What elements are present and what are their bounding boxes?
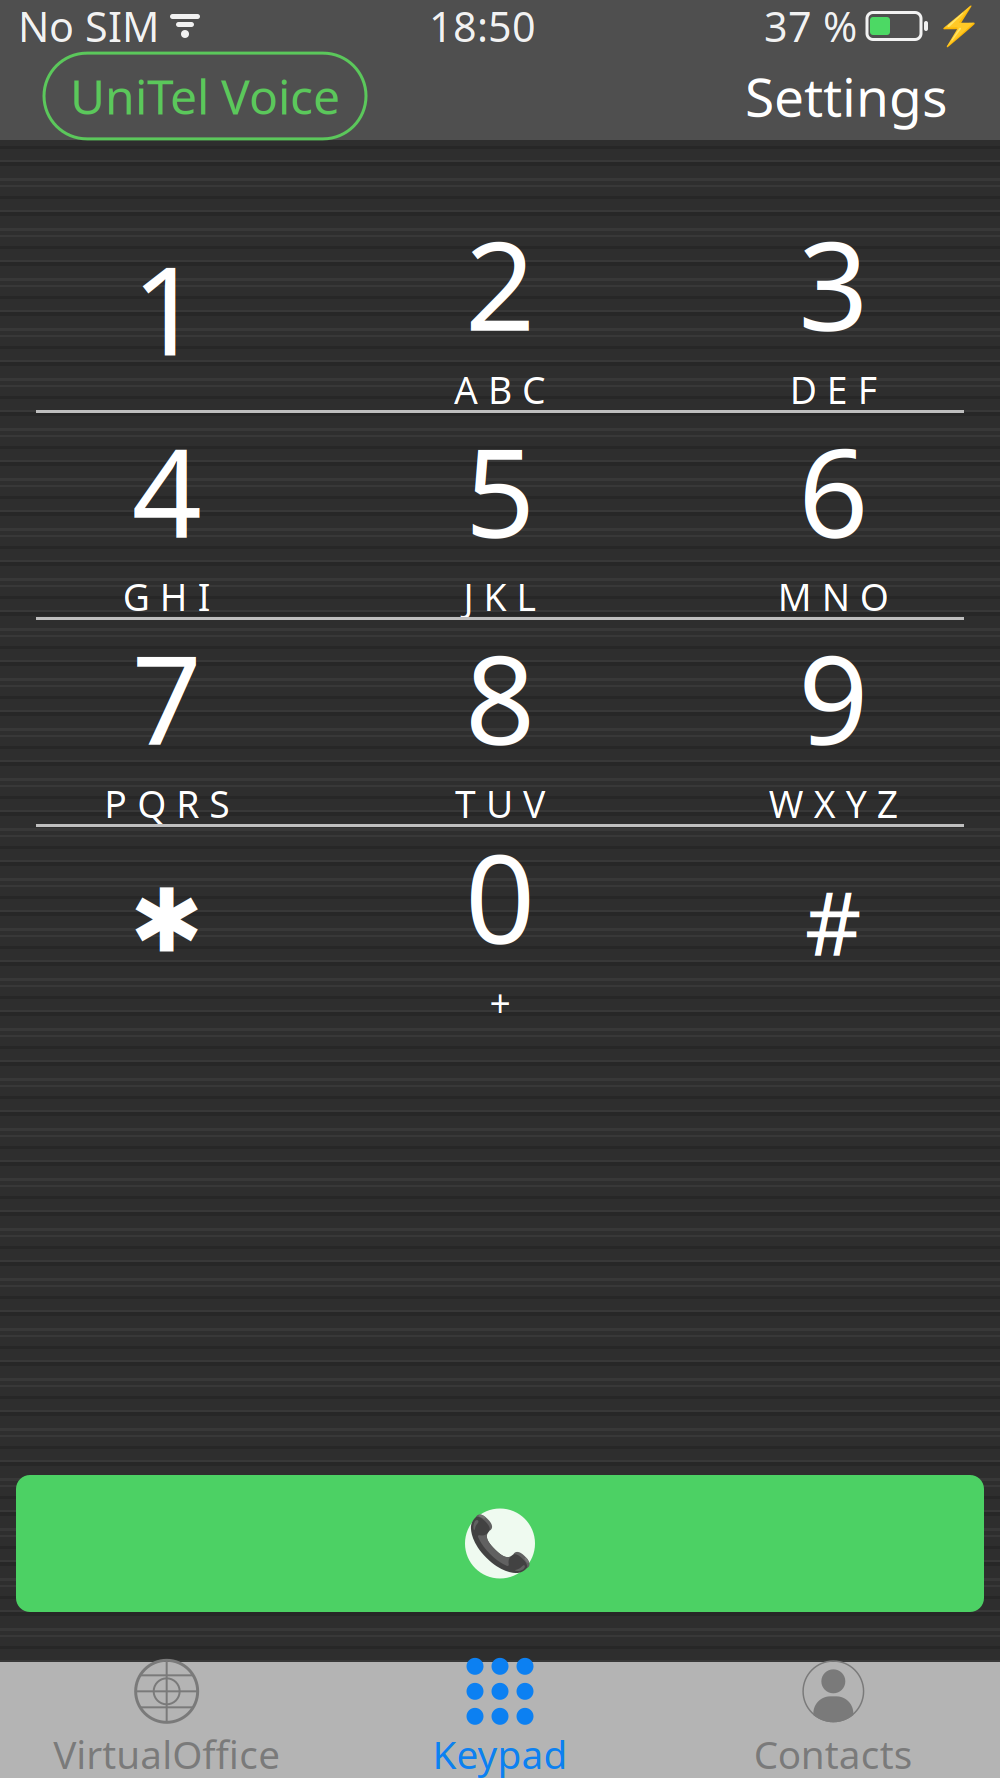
staticText: 2 xyxy=(465,202,535,365)
button[interactable]: 4 xyxy=(0,435,333,595)
button[interactable]: # xyxy=(667,841,1000,1001)
button[interactable]: 3 xyxy=(667,228,1000,388)
staticText: W X Y Z xyxy=(769,779,898,828)
staticText: G H I xyxy=(123,572,211,621)
staticText: P Q R S xyxy=(104,779,229,828)
button[interactable]: VirtualOffice xyxy=(0,1662,333,1778)
staticText: 37 % xyxy=(764,0,857,53)
staticText: J K L xyxy=(463,572,536,621)
staticText: T U V xyxy=(455,779,545,828)
staticText: + xyxy=(489,978,510,1027)
staticText: 📞 xyxy=(467,1513,533,1574)
staticText: Keypad xyxy=(432,1728,567,1778)
staticText: A B C xyxy=(454,365,546,414)
staticText: ⚡ xyxy=(936,5,982,47)
button[interactable]: Settings xyxy=(737,51,956,141)
staticText: 3 xyxy=(798,202,868,365)
button[interactable]: 2 xyxy=(333,228,667,388)
staticText: 18:50 xyxy=(429,0,536,53)
staticText: 1 xyxy=(132,227,202,389)
staticText: Settings xyxy=(745,61,948,131)
button[interactable]: 5 xyxy=(333,435,667,595)
button[interactable]: Call xyxy=(16,1475,984,1612)
button[interactable]: ✱ xyxy=(0,841,333,1001)
staticText: ✱ xyxy=(130,871,204,971)
staticText: 8 xyxy=(465,616,535,779)
staticText: Contacts xyxy=(754,1728,913,1778)
staticText: VirtualOffice xyxy=(53,1728,280,1778)
button[interactable]: 9 xyxy=(667,642,1000,802)
button[interactable]: 8 xyxy=(333,642,667,802)
button[interactable]: UniTel Voice xyxy=(44,53,366,139)
staticText: UniTel Voice xyxy=(70,64,340,128)
staticText: 5 xyxy=(465,409,535,572)
staticText: M N O xyxy=(778,572,889,621)
button[interactable]: 7 xyxy=(0,642,333,802)
button[interactable]: 6 xyxy=(667,435,1000,595)
button[interactable]: 1 xyxy=(0,228,333,388)
staticText: 7 xyxy=(132,616,202,779)
button[interactable]: Keypad xyxy=(333,1662,667,1778)
staticText: No SIM xyxy=(18,0,159,53)
staticText: # xyxy=(805,863,862,979)
staticText: 6 xyxy=(798,409,868,572)
staticText: 9 xyxy=(798,616,868,779)
button[interactable]: Contacts xyxy=(667,1662,1000,1778)
staticText: D E F xyxy=(790,365,877,414)
staticText: 0 xyxy=(465,815,535,978)
staticText: 4 xyxy=(132,409,202,572)
button[interactable]: 0 xyxy=(333,841,667,1001)
